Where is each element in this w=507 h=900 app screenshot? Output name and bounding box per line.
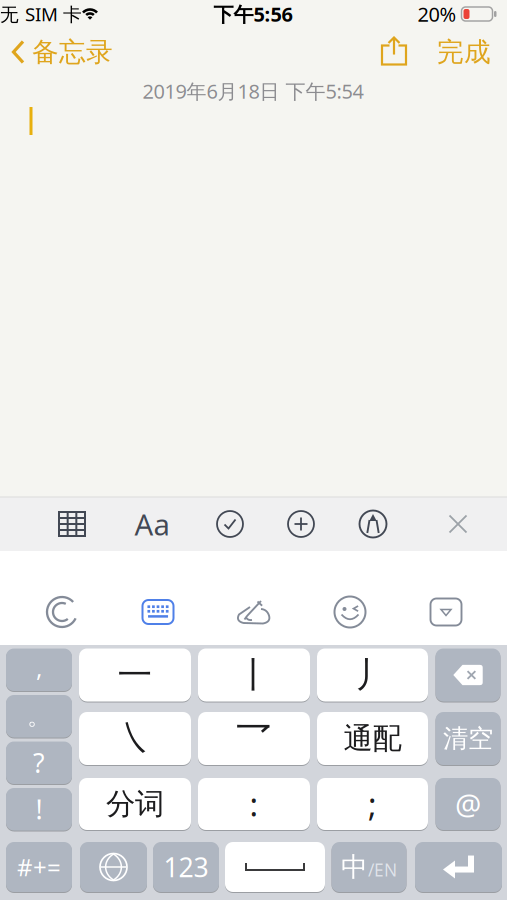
button[interactable] <box>142 600 173 624</box>
button[interactable]: 中 <box>331 841 406 892</box>
button[interactable]: 完成 <box>437 36 491 68</box>
staticText: /EN <box>368 858 397 881</box>
staticText: 备忘录 <box>32 36 113 68</box>
staticText: 清空 <box>443 723 493 754</box>
staticText: , <box>36 652 42 684</box>
button[interactable]: ! <box>6 787 72 831</box>
staticText: @ <box>455 784 481 823</box>
button[interactable]: @ <box>435 777 500 830</box>
button[interactable] <box>380 35 408 66</box>
button[interactable] <box>359 510 386 537</box>
button[interactable] <box>217 511 243 537</box>
staticText: 通配 <box>343 720 401 756</box>
button[interactable]: Aa <box>134 504 169 543</box>
button[interactable]: 乛 <box>198 711 310 765</box>
staticText: 20% <box>417 1 456 27</box>
staticText: 丿 <box>355 654 390 696</box>
staticText: Aa <box>134 504 169 543</box>
button[interactable]: 通配 <box>317 711 428 765</box>
staticText: 2019年6月18日 下午5:54 <box>142 78 363 104</box>
staticText: 丨 <box>236 654 271 696</box>
staticText: 下午5:56 <box>213 1 292 27</box>
button[interactable] <box>447 513 468 534</box>
button[interactable]: 丨 <box>198 648 310 702</box>
staticText: : <box>249 783 258 825</box>
button[interactable]: : <box>198 777 310 830</box>
staticText: 分词 <box>106 786 164 822</box>
button[interactable]: 分词 <box>79 777 191 830</box>
button[interactable] <box>80 841 147 892</box>
button[interactable] <box>225 841 325 892</box>
staticText: #+= <box>17 851 61 883</box>
staticText: 完成 <box>437 36 491 68</box>
button[interactable] <box>45 595 79 629</box>
button[interactable] <box>334 596 365 627</box>
button[interactable]: ? <box>6 741 72 784</box>
button[interactable]: 丿 <box>317 648 428 702</box>
button[interactable] <box>415 841 502 892</box>
staticText: ? <box>33 745 45 780</box>
staticText: 乛 <box>236 717 271 760</box>
button[interactable] <box>435 648 500 702</box>
button[interactable]: #+= <box>6 841 72 892</box>
button[interactable]: 。 <box>6 694 72 738</box>
button[interactable]: , <box>6 648 72 691</box>
staticText: 。 <box>27 701 51 731</box>
button[interactable]: 123 <box>153 841 219 892</box>
staticText: 123 <box>163 849 208 885</box>
staticText: ; <box>368 783 377 825</box>
staticText: 中 <box>341 851 368 883</box>
button[interactable]: ㇏ <box>79 711 191 765</box>
button[interactable]: ; <box>317 777 428 830</box>
button[interactable] <box>58 511 86 537</box>
button[interactable] <box>430 598 461 625</box>
button[interactable] <box>234 598 272 625</box>
staticText: 一 <box>117 654 152 696</box>
button[interactable] <box>288 511 314 537</box>
staticText: ! <box>35 791 42 827</box>
button[interactable]: 清空 <box>435 711 500 765</box>
button[interactable]: 一 <box>79 648 191 702</box>
staticText: ㇏ <box>117 717 152 760</box>
button[interactable]: 备忘录 <box>11 36 113 68</box>
staticText: 无 SIM 卡 <box>0 2 82 26</box>
